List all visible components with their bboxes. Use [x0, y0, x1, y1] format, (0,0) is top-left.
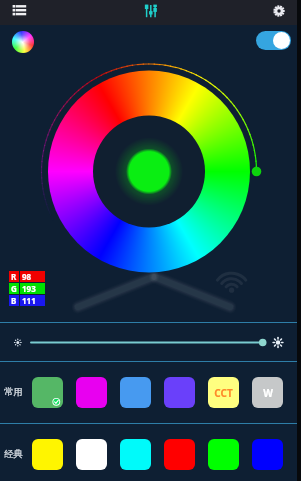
button[interactable]: Settings — [267, 0, 291, 25]
staticText: 193 — [22, 283, 36, 294]
button[interactable]: Menu — [7, 0, 31, 25]
button[interactable]: Tune — [139, 0, 163, 25]
staticText: CCT — [214, 386, 233, 400]
staticText: 经典 — [4, 448, 23, 460]
button[interactable] — [32, 439, 63, 470]
button[interactable] — [76, 377, 107, 408]
staticText: R — [11, 271, 17, 282]
button[interactable]: Power — [256, 31, 291, 50]
staticText: B — [11, 295, 17, 306]
button[interactable] — [252, 439, 283, 470]
staticText: 常用 — [4, 386, 23, 398]
button[interactable]: Brightness — [0, 323, 301, 361]
staticText: 98 — [22, 271, 32, 282]
button[interactable] — [76, 439, 107, 470]
button[interactable] — [208, 439, 239, 470]
staticText: 111 — [22, 295, 36, 306]
button[interactable]: W — [252, 377, 283, 408]
staticText: G — [11, 283, 17, 294]
button[interactable]: Color mode — [10, 29, 35, 54]
button[interactable] — [120, 377, 151, 408]
button[interactable] — [32, 377, 63, 408]
button[interactable] — [120, 439, 151, 470]
button[interactable] — [164, 377, 195, 408]
button[interactable] — [164, 439, 195, 470]
staticText: W — [263, 386, 273, 400]
button[interactable]: CCT — [208, 377, 239, 408]
